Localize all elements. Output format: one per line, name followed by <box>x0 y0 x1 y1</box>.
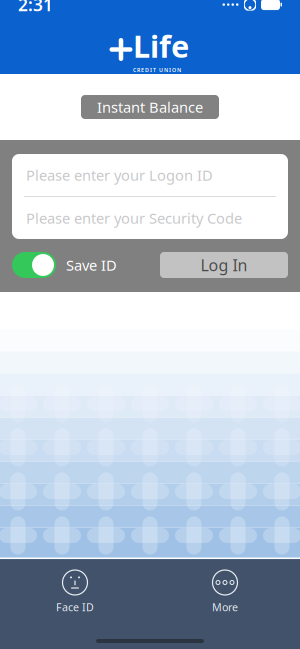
staticText: Life <box>133 26 189 66</box>
button[interactable]: More <box>190 570 260 614</box>
staticText: Face ID <box>56 600 94 614</box>
staticText: Please enter your Security Code <box>26 208 242 228</box>
staticText: Save ID <box>66 255 117 275</box>
staticText: Instant Balance <box>97 97 203 117</box>
button[interactable]: Save ID <box>12 252 117 278</box>
button[interactable]: Instant Balance <box>81 95 219 119</box>
staticText: Please enter your Logon ID <box>26 165 213 185</box>
staticText: More <box>212 600 238 614</box>
button[interactable]: Face ID <box>40 570 110 614</box>
staticText: C R E D I T U N I O N <box>133 66 181 73</box>
button[interactable]: Log In <box>160 252 288 278</box>
staticText: 2:31 <box>18 0 53 16</box>
staticText: Log In <box>200 254 247 276</box>
